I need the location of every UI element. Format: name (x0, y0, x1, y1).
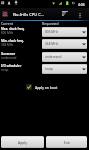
button[interactable]: I/O scheduler (0, 64, 89, 74)
button[interactable]: 806 MHz (42, 27, 87, 37)
staticText: 368 MHz (45, 42, 59, 46)
staticText: ondemand (45, 55, 62, 59)
button[interactable]: noop (42, 64, 87, 74)
staticText: 4:06 (78, 2, 85, 7)
staticText: Apply (18, 140, 27, 145)
staticText: Current (1, 21, 13, 25)
staticText: I/O scheduler (1, 64, 22, 68)
staticText: 806 MHz (1, 31, 14, 35)
staticText: Requested (42, 21, 59, 25)
staticText: Apply on boot (35, 85, 58, 90)
button[interactable]: Exit (46, 136, 87, 148)
button[interactable]: More options (75, 10, 84, 19)
button[interactable]: 368 MHz (42, 39, 87, 49)
button[interactable]: Apply (1, 136, 44, 148)
staticText: 368 MHz (1, 43, 14, 47)
button[interactable]: App icon, navigate up (2, 11, 8, 17)
button[interactable]: Profiles (60, 9, 70, 19)
staticText: ondemand (1, 56, 17, 60)
staticText: Min. clock freq. (1, 39, 24, 43)
button[interactable]: ondemand (42, 52, 87, 62)
staticText: noop (1, 68, 9, 72)
staticText: 806 MHz (45, 30, 59, 34)
button[interactable]: Governor (0, 52, 89, 62)
button[interactable]: Min. clock freq. (0, 39, 89, 49)
staticText: Governor (1, 52, 15, 56)
staticText: Exit (64, 140, 70, 145)
staticText: Max. clock freq. (1, 27, 25, 31)
button[interactable]: Apply on boot (26, 84, 58, 90)
button[interactable]: Max. clock freq. (0, 27, 89, 37)
staticText: No-frills CPU C... (13, 12, 44, 17)
staticText: noop (45, 67, 53, 71)
